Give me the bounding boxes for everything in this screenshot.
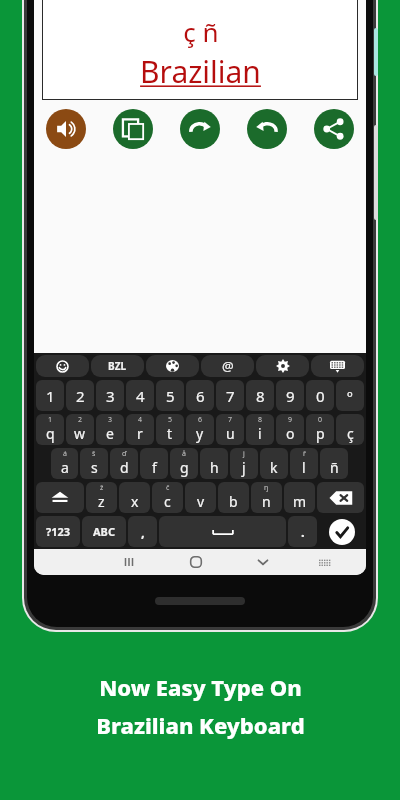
staticText: ŋ bbox=[264, 483, 269, 493]
staticText: ž bbox=[100, 483, 104, 493]
button[interactable]: 4 bbox=[126, 414, 154, 445]
staticText: 5 bbox=[168, 415, 173, 425]
button[interactable]: å bbox=[170, 448, 198, 479]
button[interactable]: Hide keyboard bbox=[229, 549, 296, 575]
staticText: 9 bbox=[288, 415, 293, 425]
staticText: f bbox=[152, 458, 157, 477]
button[interactable]: x bbox=[119, 482, 150, 513]
staticText: n bbox=[262, 492, 271, 511]
staticText: ř bbox=[303, 449, 306, 459]
button[interactable]: Recents bbox=[95, 549, 162, 575]
button[interactable]: BZL bbox=[91, 355, 144, 377]
button[interactable] bbox=[36, 482, 84, 513]
button[interactable]: 1 bbox=[36, 414, 64, 445]
button[interactable] bbox=[317, 482, 364, 513]
staticText: w bbox=[74, 424, 86, 443]
button[interactable]: ŋ bbox=[251, 482, 282, 513]
staticText: 7 bbox=[226, 386, 235, 406]
button[interactable]: k bbox=[260, 448, 288, 479]
staticText: º bbox=[347, 386, 353, 406]
button[interactable]: Enter bbox=[319, 516, 364, 547]
staticText: x bbox=[131, 492, 139, 511]
button[interactable]: 8 bbox=[246, 380, 274, 411]
button[interactable] bbox=[159, 516, 286, 547]
staticText: Now Easy Type On bbox=[99, 672, 302, 702]
button[interactable] bbox=[36, 355, 89, 377]
staticText: 1 bbox=[46, 386, 55, 406]
staticText: z bbox=[98, 492, 105, 511]
staticText: 4 bbox=[138, 415, 143, 425]
staticText: BZL bbox=[108, 359, 127, 373]
staticText: y bbox=[196, 424, 204, 443]
button[interactable] bbox=[146, 355, 199, 377]
staticText: q bbox=[46, 424, 55, 443]
button[interactable]: ž bbox=[86, 482, 117, 513]
button[interactable]: 2 bbox=[66, 414, 94, 445]
button[interactable]: á bbox=[51, 448, 78, 479]
button[interactable]: 7 bbox=[216, 414, 244, 445]
button[interactable]: Speak bbox=[46, 109, 86, 149]
staticText: 7 bbox=[228, 415, 233, 425]
button[interactable]: b bbox=[218, 482, 249, 513]
button[interactable]: ď bbox=[110, 448, 138, 479]
button[interactable]: ј bbox=[230, 448, 258, 479]
button[interactable]: 8 bbox=[246, 414, 274, 445]
staticText: s bbox=[91, 458, 98, 477]
button[interactable]: 0 bbox=[306, 414, 334, 445]
staticText: ç bbox=[347, 424, 354, 443]
staticText: 6 bbox=[196, 386, 205, 406]
button[interactable]: 6 bbox=[186, 414, 214, 445]
staticText: g bbox=[180, 458, 189, 477]
button[interactable]: 6 bbox=[186, 380, 214, 411]
button[interactable]: ç bbox=[336, 414, 364, 445]
button[interactable]: š bbox=[80, 448, 108, 479]
button[interactable]: ABC bbox=[82, 516, 126, 547]
button[interactable]: m bbox=[284, 482, 315, 513]
staticText: 3 bbox=[106, 386, 115, 406]
button[interactable]: v bbox=[185, 482, 216, 513]
button[interactable]: č bbox=[152, 482, 183, 513]
button[interactable]: f bbox=[140, 448, 168, 479]
button[interactable]: h bbox=[200, 448, 228, 479]
button[interactable]: 4 bbox=[126, 380, 154, 411]
button[interactable]: Home bbox=[162, 549, 229, 575]
staticText: h bbox=[210, 458, 219, 477]
button[interactable]: ñ bbox=[320, 448, 348, 479]
button[interactable]: Copy bbox=[113, 109, 153, 149]
staticText: , bbox=[141, 523, 145, 541]
button[interactable]: 3 bbox=[96, 380, 124, 411]
button[interactable]: 2 bbox=[66, 380, 94, 411]
button[interactable]: @ bbox=[201, 355, 254, 377]
staticText: m bbox=[293, 492, 307, 511]
staticText: t bbox=[167, 424, 173, 443]
staticText: @ bbox=[222, 357, 234, 375]
button[interactable]: ç ñ bbox=[42, 0, 358, 100]
button[interactable]: 5 bbox=[156, 414, 184, 445]
staticText: 0 bbox=[316, 386, 325, 406]
button[interactable]: , bbox=[128, 516, 157, 547]
button[interactable]: 9 bbox=[276, 380, 304, 411]
button[interactable]: 9 bbox=[276, 414, 304, 445]
staticText: k bbox=[270, 458, 278, 477]
button[interactable]: Switch keyboard bbox=[296, 549, 353, 575]
button[interactable]: 5 bbox=[156, 380, 184, 411]
staticText: a bbox=[61, 458, 69, 477]
button[interactable]: Redo bbox=[180, 109, 220, 149]
button[interactable]: º bbox=[336, 380, 364, 411]
button[interactable]: 1 bbox=[36, 380, 64, 411]
button[interactable]: 0 bbox=[306, 380, 334, 411]
button[interactable]: Undo bbox=[247, 109, 287, 149]
button[interactable]: . bbox=[288, 516, 317, 547]
staticText: v bbox=[197, 492, 205, 511]
staticText: u bbox=[226, 424, 235, 443]
button[interactable]: 7 bbox=[216, 380, 244, 411]
button[interactable]: Share bbox=[314, 109, 354, 149]
staticText: ñ bbox=[330, 458, 339, 477]
button[interactable] bbox=[311, 355, 364, 377]
button[interactable]: ?123 bbox=[36, 516, 80, 547]
staticText: p bbox=[316, 424, 325, 443]
staticText: å bbox=[182, 449, 186, 459]
button[interactable] bbox=[256, 355, 309, 377]
button[interactable]: ř bbox=[290, 448, 318, 479]
button[interactable]: 3 bbox=[96, 414, 124, 445]
